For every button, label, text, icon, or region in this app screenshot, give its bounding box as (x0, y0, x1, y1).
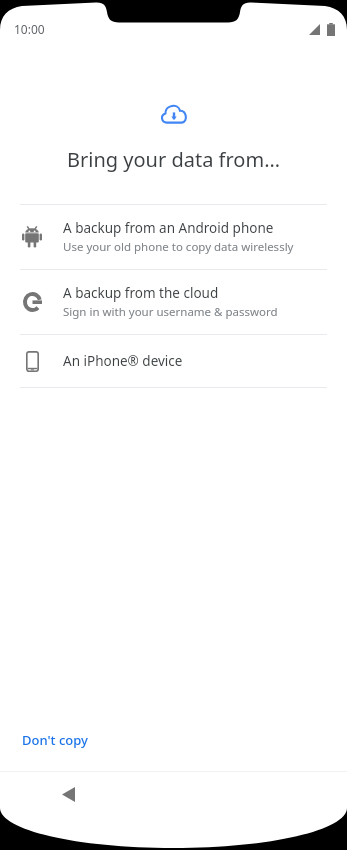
button[interactable]: Don't copy (0, 721, 110, 759)
button[interactable]: A backup from the cloud (0, 270, 347, 334)
staticText: An iPhone® device (63, 352, 183, 370)
staticText: Don't copy (22, 731, 88, 749)
staticText: Use your old phone to copy data wireless… (63, 239, 294, 255)
staticText: 10:00 (14, 21, 45, 37)
button[interactable]: An iPhone® device (0, 335, 347, 387)
staticText: Bring your data from… (0, 146, 347, 173)
staticText: Sign in with your username & password (63, 304, 278, 320)
staticText: A backup from the cloud (63, 284, 219, 302)
button[interactable]: Back (52, 778, 84, 810)
button[interactable]: A backup from an Android phone (0, 205, 347, 269)
staticText: A backup from an Android phone (63, 219, 274, 237)
